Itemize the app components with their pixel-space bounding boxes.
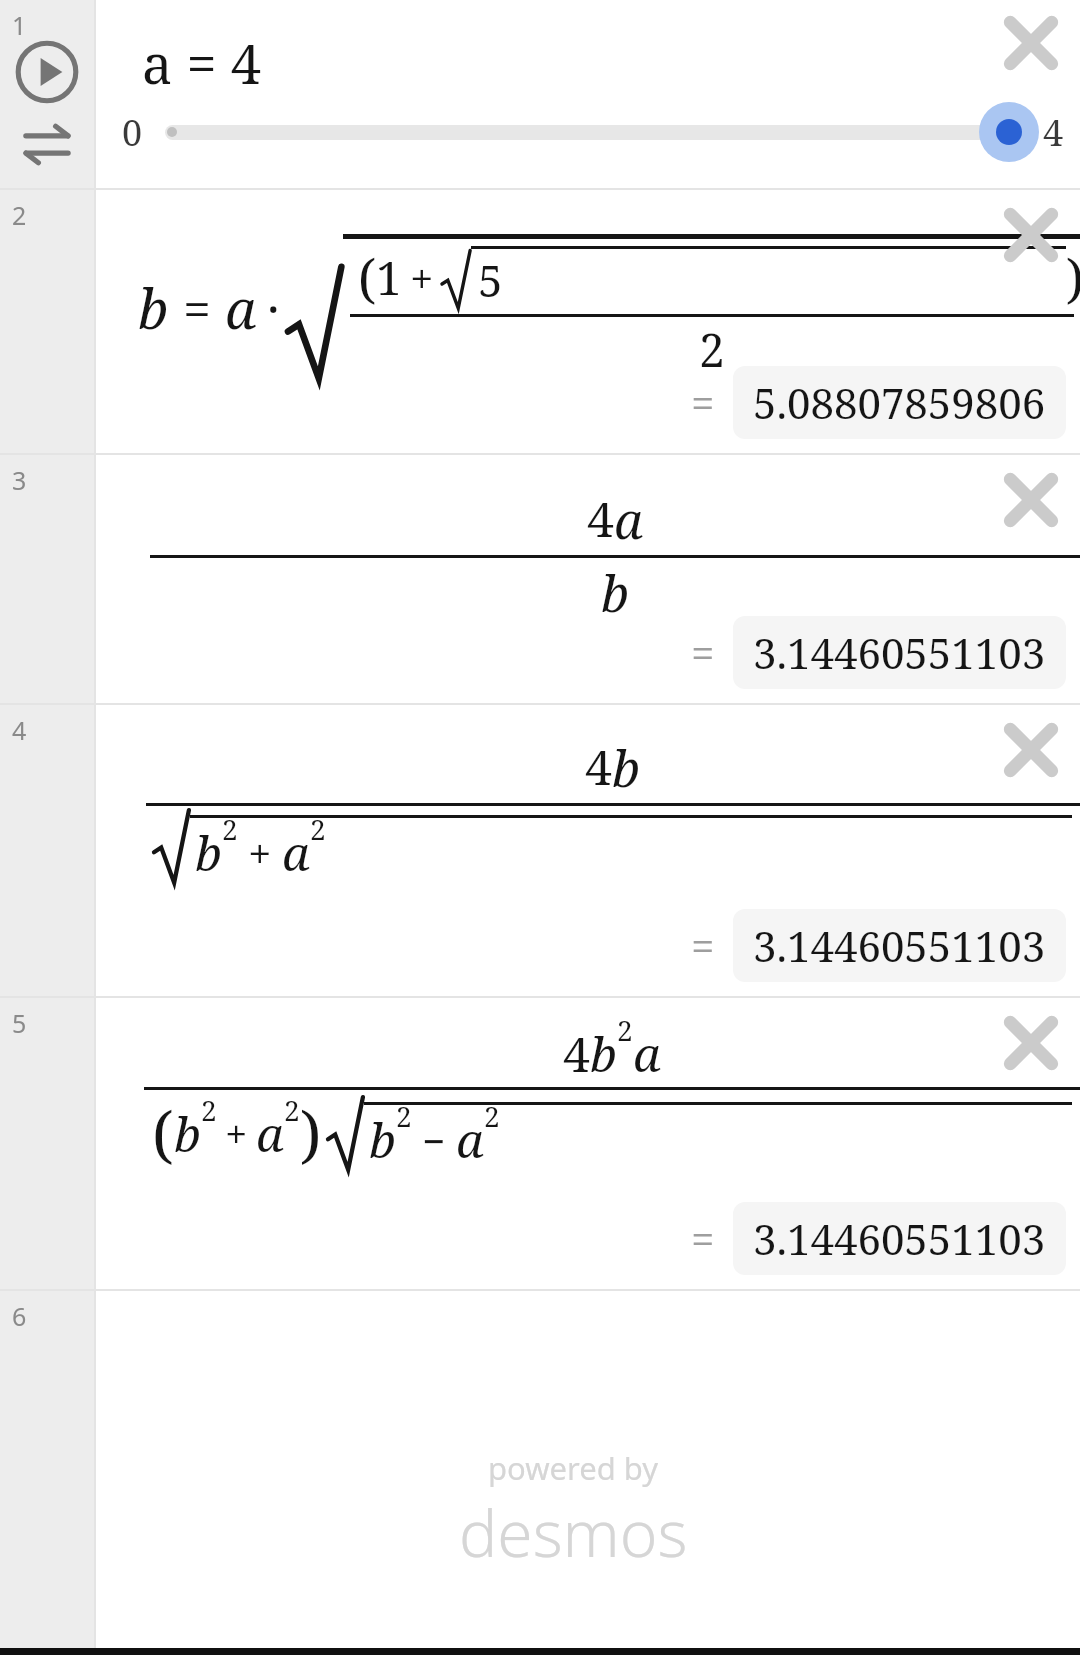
button[interactable]: Slider for a bbox=[122, 102, 1064, 162]
staticText: a bbox=[456, 1107, 484, 1172]
staticText: b bbox=[174, 1101, 201, 1166]
button[interactable]: Delete expression bbox=[988, 0, 1074, 86]
staticText: + bbox=[225, 1106, 248, 1160]
button[interactable]: Delete expression bbox=[988, 192, 1074, 278]
staticText: a bbox=[225, 271, 257, 345]
button[interactable]: Delete expression bbox=[988, 1000, 1074, 1086]
staticText: 4 bbox=[1043, 108, 1064, 157]
staticText: 2 bbox=[284, 1091, 300, 1129]
staticText: 2 bbox=[201, 1091, 217, 1129]
staticText: 3.14460551103 bbox=[753, 917, 1046, 974]
staticText: b bbox=[590, 1021, 617, 1086]
button[interactable]: 3.14460551103 bbox=[753, 917, 1046, 974]
staticText: 1 bbox=[376, 246, 402, 309]
button[interactable]: 3.14460551103 bbox=[753, 624, 1046, 681]
staticText: desmos bbox=[459, 1489, 688, 1576]
staticText: = bbox=[691, 1210, 715, 1267]
staticText: ( bbox=[358, 242, 376, 313]
staticText: 4 bbox=[585, 734, 612, 799]
staticText: = bbox=[183, 274, 211, 342]
staticText: 3.14460551103 bbox=[753, 624, 1046, 681]
button[interactable]: 3.14460551103 bbox=[753, 1210, 1046, 1267]
staticText: 2 bbox=[310, 810, 326, 848]
staticText: ) bbox=[300, 1091, 322, 1175]
staticText: + bbox=[410, 249, 434, 306]
staticText: = bbox=[691, 374, 715, 431]
staticText: 2 bbox=[617, 1011, 633, 1049]
staticText: = bbox=[691, 917, 715, 974]
staticText: 2 bbox=[699, 318, 725, 381]
staticText: 2 bbox=[12, 198, 27, 232]
staticText: powered by bbox=[488, 1447, 659, 1489]
button[interactable]: 5 bbox=[0, 998, 94, 1289]
staticText: · bbox=[267, 274, 280, 342]
staticText: 4 bbox=[12, 713, 27, 747]
button[interactable]: Reverse slider direction bbox=[17, 114, 77, 174]
button[interactable]: 5.08807859806 bbox=[753, 374, 1046, 431]
staticText: b bbox=[195, 820, 222, 885]
button[interactable]: Delete expression bbox=[988, 457, 1074, 543]
staticText: a = 4 bbox=[142, 26, 261, 100]
staticText: − bbox=[422, 1113, 446, 1167]
staticText: 3.14460551103 bbox=[753, 1210, 1046, 1267]
staticText: = bbox=[691, 624, 715, 681]
staticText: 4 bbox=[587, 486, 614, 551]
button[interactable]: 1 bbox=[0, 0, 94, 188]
staticText: 1 bbox=[12, 8, 27, 42]
staticText: 3 bbox=[12, 463, 27, 497]
staticText: b bbox=[138, 271, 169, 345]
button[interactable]: Delete expression bbox=[988, 707, 1074, 793]
staticText: b bbox=[612, 734, 641, 802]
staticText: 4 bbox=[563, 1021, 590, 1086]
staticText: b bbox=[601, 559, 630, 627]
staticText: ( bbox=[152, 1091, 174, 1175]
staticText: 5.08807859806 bbox=[753, 374, 1046, 431]
staticText: 5 bbox=[12, 1006, 27, 1040]
staticText: a bbox=[256, 1101, 284, 1166]
staticText: 5 bbox=[478, 250, 503, 310]
staticText: a bbox=[282, 820, 310, 885]
staticText: 0 bbox=[122, 108, 143, 157]
staticText: 2 bbox=[484, 1097, 500, 1135]
staticText: b bbox=[369, 1107, 396, 1172]
staticText: 2 bbox=[396, 1097, 412, 1135]
button[interactable]: 2 bbox=[0, 190, 94, 453]
button[interactable]: 6 bbox=[0, 1291, 94, 1648]
staticText: + bbox=[248, 824, 272, 881]
button[interactable]: 4 bbox=[0, 705, 94, 996]
staticText: 2 bbox=[222, 810, 238, 848]
button[interactable]: 3 bbox=[0, 455, 94, 703]
staticText: a bbox=[614, 486, 643, 554]
button[interactable]: Play slider animation bbox=[11, 36, 83, 108]
staticText: 6 bbox=[12, 1299, 27, 1333]
staticText: a bbox=[633, 1021, 661, 1086]
